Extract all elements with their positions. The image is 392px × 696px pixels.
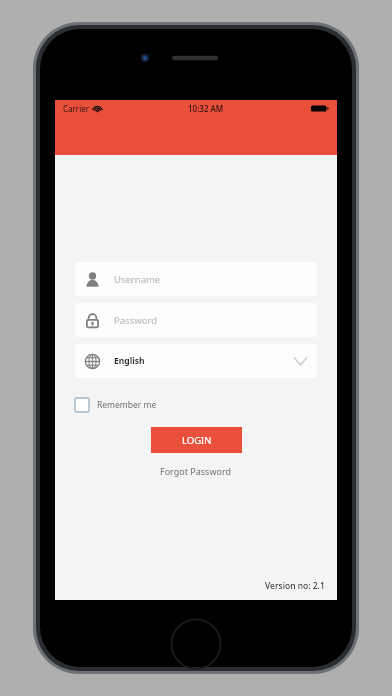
button[interactable]: Password bbox=[75, 303, 317, 337]
button[interactable]: LOGIN bbox=[151, 427, 242, 453]
staticText: English bbox=[114, 355, 145, 367]
staticText: Remember me bbox=[97, 399, 157, 411]
staticText: Username bbox=[114, 273, 161, 286]
button[interactable]: English bbox=[75, 344, 317, 378]
staticText: Carrier bbox=[63, 103, 90, 114]
staticText: LOGIN bbox=[182, 434, 212, 447]
staticText: Version no: 2.1 bbox=[265, 580, 325, 592]
button[interactable]: Username bbox=[75, 262, 317, 296]
button[interactable]: Forgot Password bbox=[160, 465, 232, 477]
staticText: Password bbox=[114, 314, 157, 327]
button[interactable]: Remember me bbox=[75, 398, 157, 412]
staticText: 10:32 AM bbox=[188, 103, 224, 114]
